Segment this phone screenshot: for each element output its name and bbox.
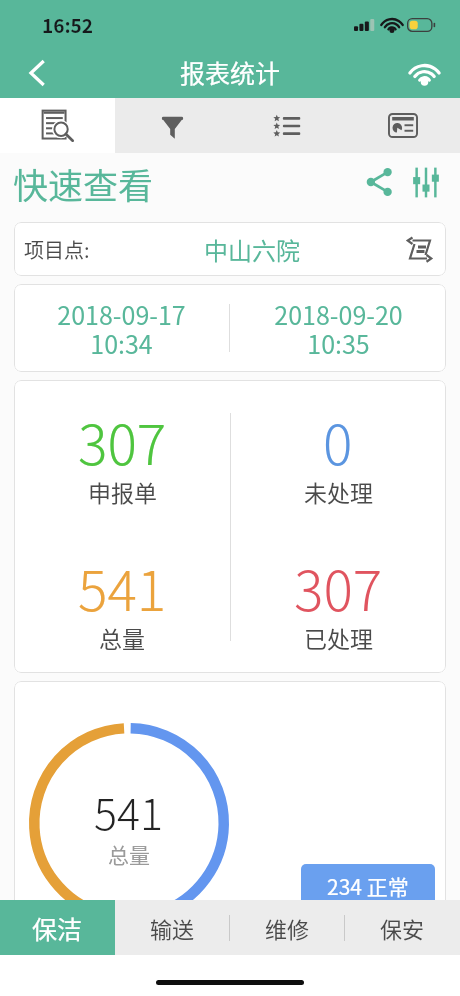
- button[interactable]: Settings: [403, 160, 449, 206]
- staticText: 报表统计: [180, 54, 281, 90]
- staticText: 输送: [150, 912, 195, 944]
- button[interactable]: Switch site: [404, 234, 434, 264]
- button[interactable]: 维修: [230, 900, 345, 955]
- button[interactable]: 保安: [345, 900, 460, 955]
- staticText: 2018-09-20 10:35: [274, 296, 403, 361]
- button[interactable]: 2018-09-17 10:34: [14, 284, 229, 372]
- staticText: 234 正常: [327, 871, 409, 901]
- button[interactable]: 输送: [115, 900, 230, 955]
- staticText: 快速查看: [13, 158, 154, 209]
- button[interactable]: 307: [14, 384, 230, 530]
- button[interactable]: Chart report: [345, 98, 460, 153]
- staticText: 总量: [108, 839, 150, 869]
- staticText: 项目点:: [24, 235, 90, 264]
- staticText: 已处理: [304, 621, 373, 654]
- button[interactable]: 2018-09-20 10:35: [230, 284, 446, 372]
- staticText: 未处理: [304, 475, 373, 508]
- staticText: 维修: [265, 912, 310, 944]
- button[interactable]: Share: [356, 160, 402, 206]
- staticText: 541: [94, 780, 164, 842]
- button[interactable]: Filter: [115, 98, 230, 153]
- staticText: 307: [294, 547, 383, 627]
- button[interactable]: 541: [14, 530, 230, 673]
- button[interactable]: Starred list: [230, 98, 345, 153]
- button[interactable]: WiFi: [400, 49, 448, 97]
- staticText: 307: [78, 401, 167, 481]
- button[interactable]: Report search: [0, 98, 115, 153]
- button[interactable]: Back: [13, 49, 61, 97]
- staticText: 541: [78, 547, 167, 627]
- button[interactable]: 0: [230, 384, 446, 530]
- staticText: 16:52: [42, 11, 94, 39]
- button[interactable]: 234 正常: [301, 864, 435, 908]
- staticText: 中山六院: [204, 232, 300, 267]
- staticText: 0: [323, 401, 353, 481]
- staticText: 总量: [99, 621, 145, 654]
- button[interactable]: 保洁: [0, 900, 115, 955]
- staticText: 2018-09-17 10:34: [57, 296, 186, 361]
- button[interactable]: 307: [230, 530, 446, 673]
- staticText: 保洁: [32, 910, 83, 946]
- staticText: 申报单: [88, 475, 157, 508]
- staticText: 保安: [380, 912, 425, 944]
